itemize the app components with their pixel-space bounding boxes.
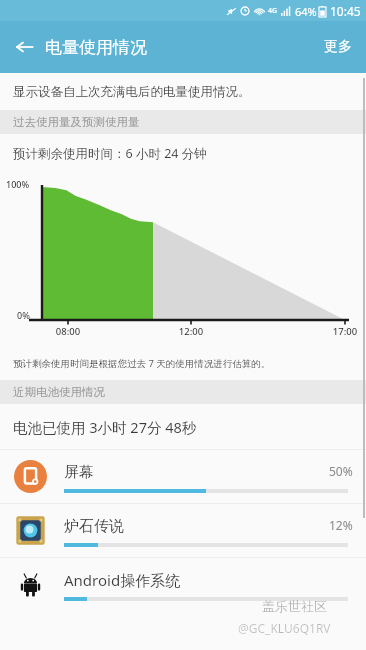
button[interactable]: 更多: [310, 26, 366, 68]
staticText: 炉石传说: [64, 517, 124, 536]
staticText: 100%: [6, 178, 30, 190]
staticText: 电量使用情况: [45, 37, 147, 58]
staticText: 近期电池使用情况: [13, 385, 105, 399]
staticText: 屏幕: [64, 463, 94, 482]
staticText: 12%: [329, 517, 353, 533]
staticText: 过去使用量及预测使用量: [13, 115, 140, 129]
staticText: 50%: [329, 463, 353, 479]
staticText: 0%: [17, 309, 30, 321]
staticText: 64%: [295, 4, 317, 19]
staticText: 10:45: [330, 3, 361, 19]
staticText: Android操作系统: [64, 570, 181, 590]
staticText: 12:00: [173, 325, 209, 338]
button[interactable]: Android操作系统: [0, 558, 366, 611]
staticText: @GC_KLU6Q1RV: [238, 620, 331, 636]
staticText: 电池已使用 3小时 27分 48秒: [13, 417, 197, 437]
button[interactable]: 返回: [6, 28, 44, 66]
staticText: 盖乐世社区: [262, 598, 327, 614]
staticText: 4G: [268, 6, 278, 16]
staticText: 08:00: [50, 325, 86, 338]
staticText: 17:00: [327, 325, 363, 338]
staticText: 显示设备自上次充满电后的电量使用情况。: [13, 84, 251, 100]
button[interactable]: 炉石传说: [0, 504, 366, 557]
button[interactable]: 屏幕: [0, 450, 366, 503]
staticText: 预计剩余使用时间：6 小时 24 分钟: [13, 145, 207, 162]
staticText: 更多: [324, 38, 352, 56]
staticText: 预计剩余使用时间是根据您过去 7 天的使用情况进行估算的。: [13, 357, 271, 370]
